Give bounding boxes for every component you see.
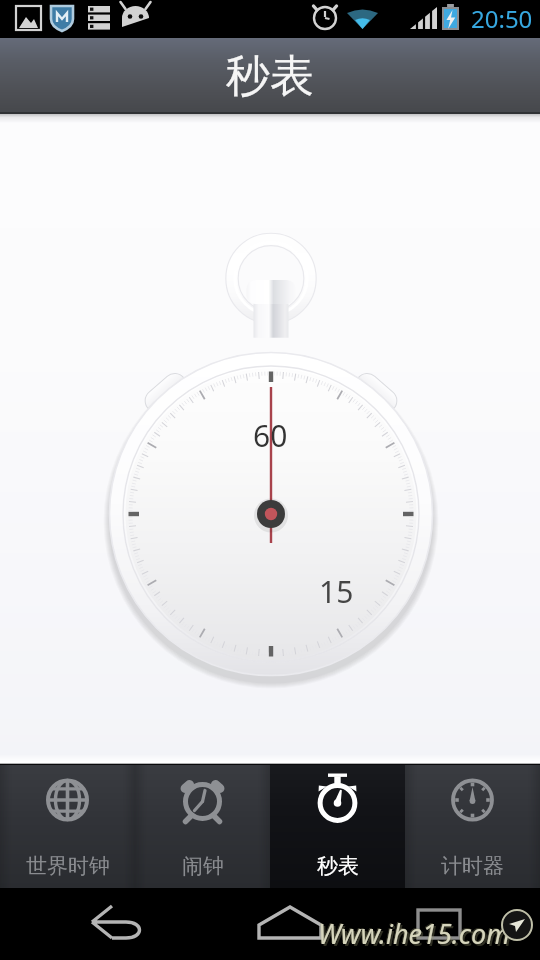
button[interactable]: 闹钟 bbox=[135, 765, 270, 888]
button[interactable]: 计时器 bbox=[405, 765, 540, 888]
staticText: 计时器 bbox=[441, 853, 504, 879]
staticText: 20:50 bbox=[471, 2, 533, 35]
button[interactable]: 世界时钟 bbox=[0, 765, 135, 888]
button[interactable]: Recent apps bbox=[340, 888, 540, 960]
staticText: 闹钟 bbox=[182, 853, 224, 879]
staticText: 秒表 bbox=[317, 853, 359, 879]
button[interactable]: Start stopwatch bbox=[110, 353, 433, 676]
staticText: 世界时钟 bbox=[26, 853, 110, 879]
staticText: 60 bbox=[253, 415, 288, 456]
button[interactable]: Home bbox=[240, 888, 340, 960]
staticText: 15 bbox=[319, 571, 354, 612]
staticText: Www.ihe15.com bbox=[318, 915, 510, 952]
button[interactable]: 秒表 bbox=[270, 765, 405, 888]
staticText: 秒表 bbox=[226, 49, 314, 104]
button[interactable]: Back bbox=[0, 888, 240, 960]
staticText: Www.ihe15.com bbox=[317, 914, 509, 951]
staticText: Www.ihe15.com bbox=[320, 917, 512, 954]
